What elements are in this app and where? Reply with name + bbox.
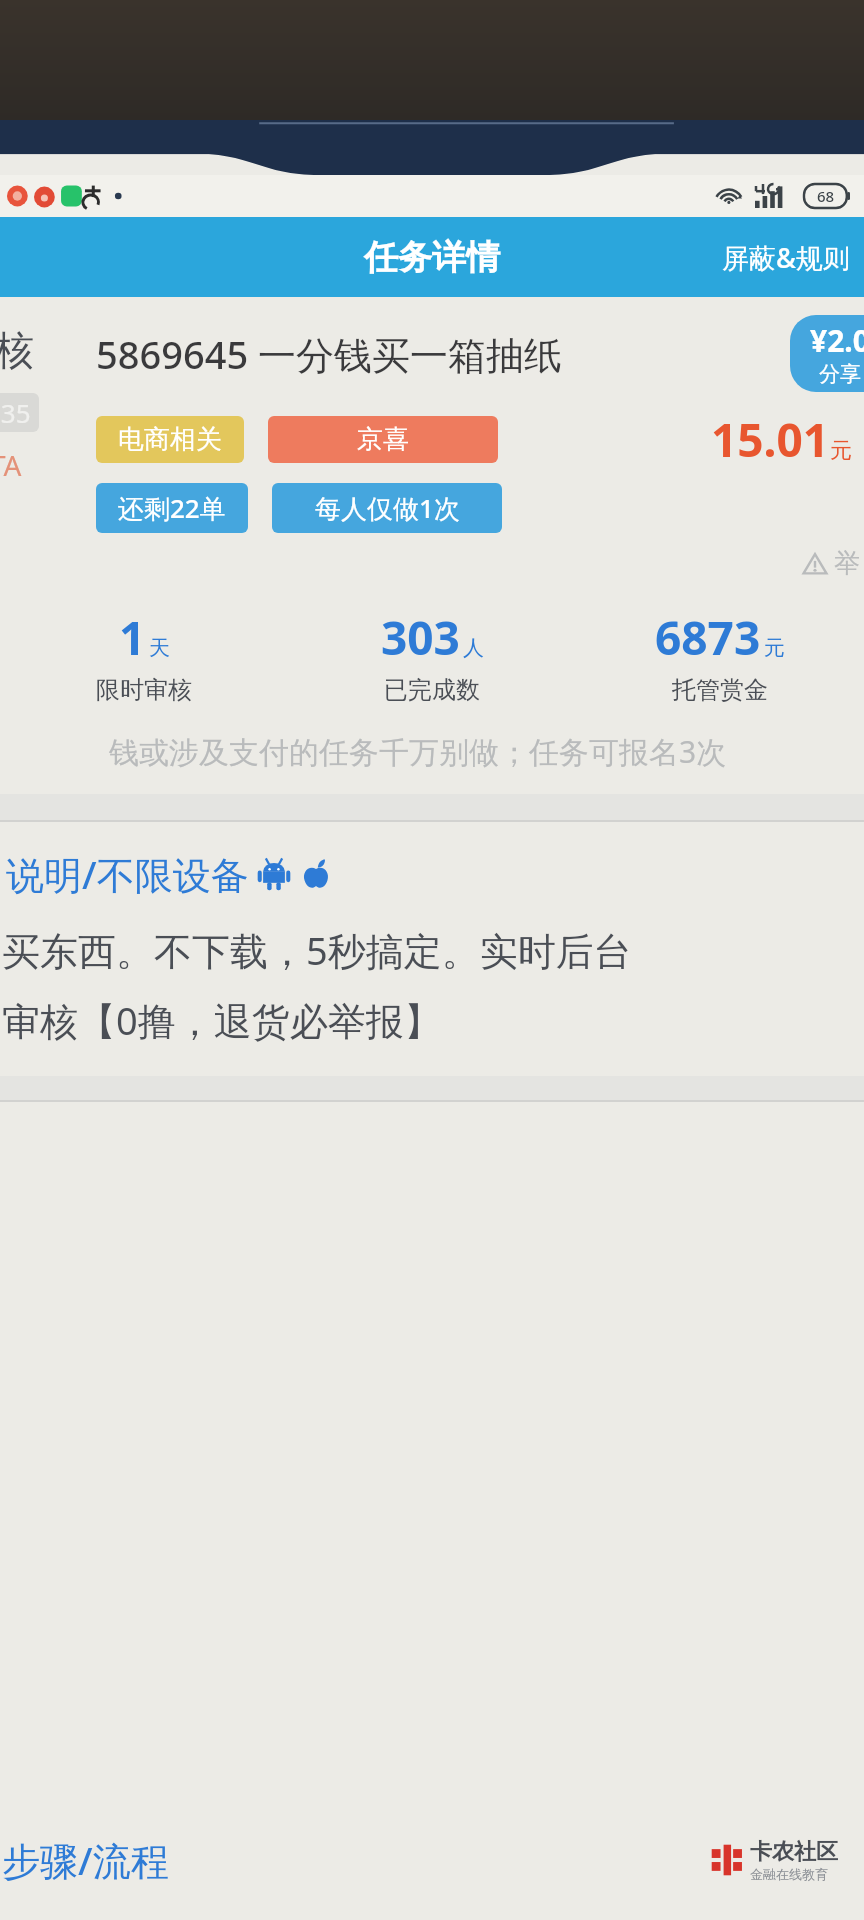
button[interactable]: 电商相关 <box>96 416 244 463</box>
other: 警告 <box>802 551 828 577</box>
staticText: 每人仅做1次 <box>315 490 460 526</box>
staticText: 68 <box>817 186 835 206</box>
staticText: 卡农社区 <box>750 1838 838 1866</box>
staticText: 托管赏金 <box>672 675 768 705</box>
staticText: 元 <box>830 437 852 465</box>
button[interactable]: 每人仅做1次 <box>272 483 502 533</box>
staticText: 5869645 一分钱买一箱抽纸 <box>96 328 563 380</box>
staticText: 举 <box>834 547 860 580</box>
staticText: 步骤/流程 <box>2 1834 169 1886</box>
staticText: 限时审核 <box>96 675 192 705</box>
staticText: 京喜 <box>357 423 409 456</box>
button[interactable]: ¥2.0 <box>790 315 864 392</box>
staticText: 还剩22单 <box>118 490 226 526</box>
staticText: 说明/不限设备 <box>6 848 249 900</box>
button[interactable]: 还剩22单 <box>96 483 248 533</box>
other: iOS <box>301 859 331 889</box>
staticText: 钱或涉及支付的任务千万别做；任务可报名3次 <box>109 731 727 772</box>
staticText: 天 <box>149 635 170 661</box>
staticText: 核 <box>0 325 34 375</box>
staticText: 1 <box>119 606 146 669</box>
staticText: 人 <box>463 635 484 661</box>
button[interactable]: 京喜 <box>268 416 498 463</box>
staticText: 任务详情 <box>364 236 500 279</box>
button[interactable]: 屏蔽&规则 <box>708 229 864 286</box>
staticText: 6873 <box>655 606 761 669</box>
staticText: 电商相关 <box>118 423 222 456</box>
staticText: 审核【0撸，退货必举报】 <box>2 994 442 1046</box>
staticText: TA <box>0 446 22 484</box>
staticText: 金融在线教育 <box>750 1866 828 1882</box>
other: Android <box>257 857 291 891</box>
staticText: 屏蔽&规则 <box>722 239 850 276</box>
staticText: 935 <box>0 395 31 430</box>
staticText: 303 <box>381 606 460 669</box>
staticText: ¥2.0 <box>810 320 864 361</box>
staticText: 已完成数 <box>384 675 480 705</box>
staticText: 元 <box>764 635 785 661</box>
staticText: 买东西。不下载，5秒搞定。实时后台 <box>2 924 632 976</box>
staticText: 分享 <box>819 361 861 387</box>
staticText: 15.01 <box>711 408 830 471</box>
